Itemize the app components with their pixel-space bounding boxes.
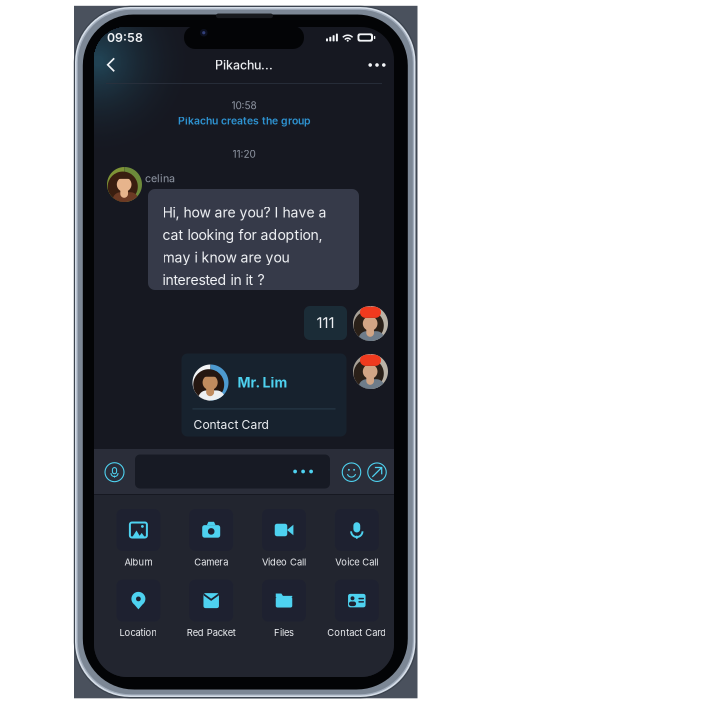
staticText: Location xyxy=(119,627,157,638)
staticText: Video Call xyxy=(262,556,306,568)
staticText: Contact Card xyxy=(193,417,268,432)
staticText: Mr. Lim xyxy=(237,374,287,391)
staticText: Red Packet xyxy=(187,627,236,638)
button[interactable]: Location xyxy=(98,580,171,639)
button[interactable]: Files xyxy=(244,580,317,639)
staticText: Voice Call xyxy=(335,556,378,568)
button[interactable]: Mr. Lim xyxy=(181,353,346,436)
button[interactable]: More options xyxy=(363,51,391,79)
staticText: Hi, how are you? I have a cat looking fo… xyxy=(162,204,326,288)
staticText: 11:20 xyxy=(232,148,255,160)
button[interactable]: Voice message xyxy=(103,461,126,484)
button[interactable]: Voice Call xyxy=(317,509,390,568)
button[interactable]: Emoji xyxy=(340,461,363,484)
staticText: celina xyxy=(145,172,175,185)
button[interactable]: Video Call xyxy=(244,509,317,568)
button[interactable]: Send xyxy=(365,461,388,484)
button[interactable]: Album xyxy=(98,509,171,568)
staticText: Pikachu creates the group xyxy=(178,114,310,127)
button[interactable]: Camera xyxy=(171,509,244,568)
staticText: Contact Card xyxy=(327,627,386,638)
staticText: 09:58 xyxy=(107,30,143,45)
staticText: Pikachu... xyxy=(215,57,273,72)
staticText: Album xyxy=(124,556,152,568)
button[interactable]: Contact Card xyxy=(317,580,390,639)
staticText: Files xyxy=(274,627,294,638)
button[interactable]: Red Packet xyxy=(171,580,244,639)
staticText: Camera xyxy=(194,556,228,568)
staticText: 111 xyxy=(316,314,334,332)
button[interactable]: Back xyxy=(97,51,125,79)
staticText: 10:58 xyxy=(231,99,256,112)
